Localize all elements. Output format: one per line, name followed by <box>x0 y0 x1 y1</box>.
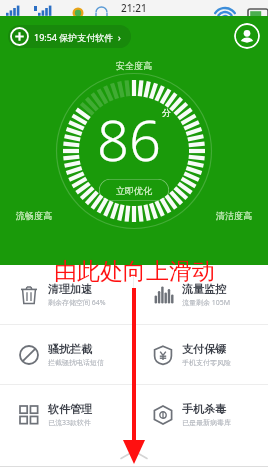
staticText: 流量监控 <box>182 282 226 296</box>
staticText: 手机杀毒 <box>182 402 226 416</box>
staticText: 流量剩余 105M <box>182 298 231 308</box>
staticText: 已是最新病毒库 <box>182 418 231 427</box>
staticText: 86 <box>97 101 161 177</box>
staticText: 安全度高 <box>116 60 152 71</box>
button[interactable]: Account <box>234 23 260 49</box>
button[interactable]: 流量监控 <box>134 265 268 324</box>
staticText: 拦截骚扰电话短信 <box>48 358 104 367</box>
staticText: 手机支付零风险 <box>182 358 231 367</box>
staticText: 流畅度高 <box>16 210 52 221</box>
staticText: 立即优化 <box>116 185 152 196</box>
button[interactable]: 19:54 保护支付软件 › <box>8 25 131 48</box>
staticText: 已流33款软件 <box>48 418 92 428</box>
staticText: 21:21 <box>121 1 147 15</box>
staticText: 支付保镖 <box>182 342 226 356</box>
button[interactable]: 立即优化 <box>99 179 169 201</box>
button[interactable]: 手机杀毒 <box>134 385 268 444</box>
button[interactable]: 清理加速 <box>0 265 133 324</box>
button[interactable]: 骚扰拦截 <box>0 325 133 384</box>
button[interactable]: 软件管理 <box>0 385 133 444</box>
staticText: 由此处向上滑动 <box>54 257 215 286</box>
staticText: 19:54 保护支付软件 › <box>34 31 121 43</box>
staticText: 骚扰拦截 <box>48 342 92 356</box>
button[interactable]: 支付保镖 <box>134 325 268 384</box>
staticText: 清理加速 <box>48 282 92 296</box>
staticText: 分 <box>162 107 171 118</box>
staticText: 软件管理 <box>48 402 92 416</box>
staticText: 剩余存储空间 64% <box>48 298 106 308</box>
staticText: 清洁度高 <box>216 210 252 221</box>
